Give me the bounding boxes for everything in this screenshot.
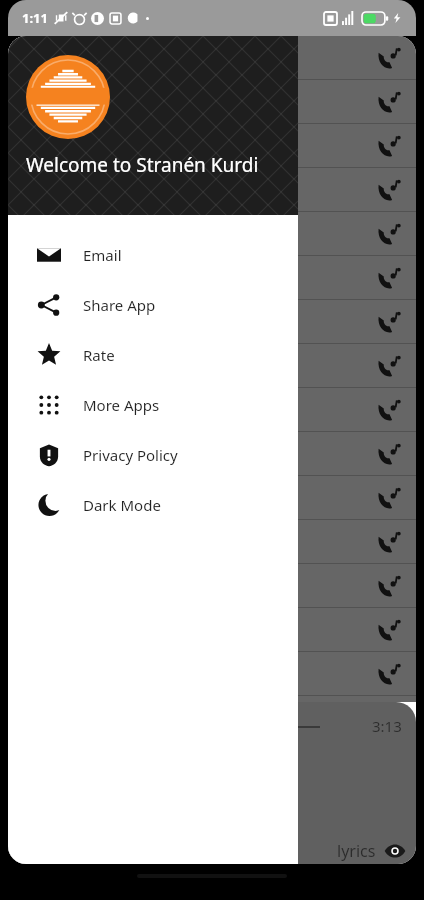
button[interactable] [8, 124, 416, 168]
button[interactable] [8, 432, 416, 476]
button[interactable]: Privacy Policy [8, 430, 298, 480]
staticText: 1:11 [22, 9, 48, 27]
button[interactable] [8, 344, 416, 388]
button[interactable] [8, 520, 416, 564]
button[interactable]: Dark Mode [8, 480, 298, 530]
staticText: lyrics [337, 840, 376, 862]
staticText: Email [83, 245, 122, 265]
staticText: Dark Mode [83, 495, 161, 515]
button[interactable] [8, 80, 416, 124]
button[interactable] [8, 564, 416, 608]
staticText: Share App [83, 295, 156, 315]
button[interactable] [8, 168, 416, 212]
button[interactable]: Email [8, 230, 298, 280]
button[interactable] [8, 212, 416, 256]
staticText: 3:13 [372, 716, 402, 736]
staticText: Rate [83, 345, 115, 365]
button[interactable] [8, 608, 416, 652]
staticText: Welcome to Stranén Kurdi [26, 152, 259, 178]
button[interactable]: lyrics [337, 840, 406, 862]
button[interactable] [8, 256, 416, 300]
button[interactable]: Rate [8, 330, 298, 380]
staticText: More Apps [83, 395, 160, 415]
button[interactable] [8, 652, 416, 696]
button[interactable] [8, 300, 416, 344]
staticText: Privacy Policy [83, 445, 178, 465]
button[interactable]: More Apps [8, 380, 298, 430]
button[interactable] [8, 476, 416, 520]
button[interactable] [8, 388, 416, 432]
button[interactable] [8, 36, 416, 80]
button[interactable]: Share App [8, 280, 298, 330]
